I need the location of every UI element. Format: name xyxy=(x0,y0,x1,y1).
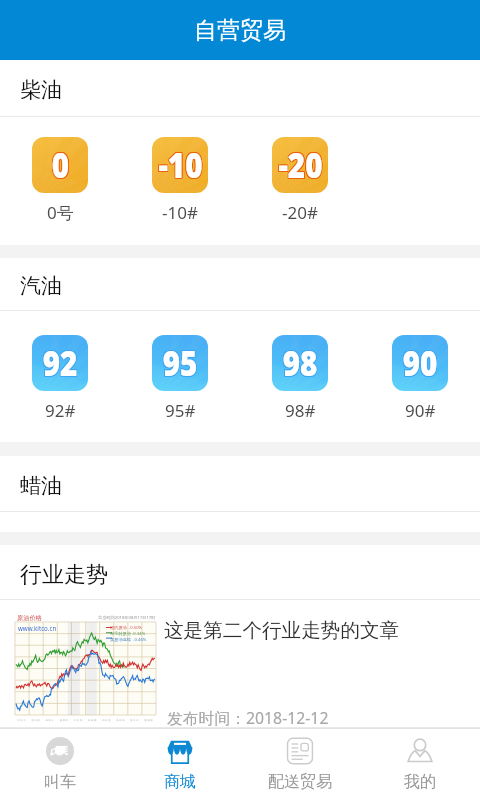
button[interactable]: 叫车 xyxy=(0,729,120,800)
button[interactable]: -20 xyxy=(240,117,360,245)
staticText: 90 xyxy=(402,338,438,386)
staticText: 90 xyxy=(403,340,439,388)
staticText: -10 xyxy=(159,142,204,190)
staticText: 北京时间2018年08月17日17时 xyxy=(98,615,156,621)
staticText: -10 xyxy=(158,141,203,189)
staticText: 92 xyxy=(42,338,78,386)
button[interactable]: 0 xyxy=(0,117,120,245)
button[interactable]: 我的 xyxy=(360,729,480,800)
staticText: 92 xyxy=(43,340,79,388)
staticText: 0 xyxy=(52,142,69,190)
staticText: -10 xyxy=(157,140,202,188)
staticText: 98 xyxy=(282,339,318,387)
staticText: -20 xyxy=(278,141,323,189)
staticText: -20 xyxy=(279,140,324,188)
staticText: -10 xyxy=(157,141,202,189)
staticText: 配送贸易 xyxy=(268,772,332,792)
staticText: 95 xyxy=(163,338,199,386)
staticText: 0号 xyxy=(47,201,74,224)
staticText: 92 xyxy=(43,338,79,386)
staticText: -10 xyxy=(158,142,203,190)
staticText: -10 xyxy=(158,140,203,188)
staticText: 98# xyxy=(285,399,316,422)
button[interactable]: 商城 xyxy=(120,729,240,800)
staticText: 0 xyxy=(51,141,68,189)
staticText: 自营贸易 xyxy=(194,16,286,45)
staticText: 92# xyxy=(45,399,76,422)
staticText: 98 xyxy=(281,339,317,387)
staticText: 0 xyxy=(52,141,69,189)
staticText: 90 xyxy=(401,339,437,387)
staticText: 92 xyxy=(43,339,79,387)
staticText: 0 xyxy=(52,140,69,188)
button[interactable]: 98 xyxy=(240,311,360,442)
staticText: 95 xyxy=(162,339,198,387)
staticText: 98 xyxy=(282,338,318,386)
staticText: -10 xyxy=(159,140,204,188)
staticText: 柴油 xyxy=(20,77,62,103)
staticText: 90 xyxy=(403,338,439,386)
staticText: 0 xyxy=(52,141,70,189)
staticText: 90 xyxy=(403,339,439,387)
staticText: 92 xyxy=(41,340,77,388)
staticText: 95 xyxy=(161,339,197,387)
button[interactable]: 配送贸易 xyxy=(240,729,360,800)
staticText: 商城 xyxy=(164,772,196,792)
staticText: 95 xyxy=(162,340,198,388)
staticText: -20 xyxy=(277,140,322,188)
staticText: 95 xyxy=(163,340,199,388)
staticText: 92 xyxy=(42,339,78,387)
staticText: 98 xyxy=(281,340,317,388)
staticText: 我的 xyxy=(404,772,436,792)
staticText: 纽约原油 -0.50% xyxy=(110,625,143,631)
staticText: 92 xyxy=(41,339,77,387)
staticText: 叫车 xyxy=(44,772,76,792)
staticText: 95 xyxy=(162,338,198,386)
staticText: 95# xyxy=(165,399,196,422)
staticText: 0 xyxy=(51,142,68,190)
staticText: -20 xyxy=(277,141,322,189)
staticText: 原油价格 xyxy=(17,614,42,622)
staticText: 98 xyxy=(282,340,318,388)
staticText: 95 xyxy=(161,340,197,388)
button[interactable]: 92 xyxy=(0,311,120,442)
staticText: 98 xyxy=(283,339,319,387)
staticText: 0 xyxy=(52,140,70,188)
staticText: 0 xyxy=(51,140,68,188)
staticText: -20 xyxy=(278,142,323,190)
button[interactable]: -10 xyxy=(120,117,240,245)
button[interactable]: 90 xyxy=(360,311,480,442)
staticText: -20# xyxy=(282,201,318,224)
button[interactable]: 原油价格 xyxy=(0,600,480,727)
staticText: 95 xyxy=(163,339,199,387)
staticText: www.kitco.cn xyxy=(18,624,57,632)
staticText: 90 xyxy=(402,339,438,387)
staticText: 92 xyxy=(42,340,78,388)
staticText: 0 xyxy=(52,142,70,190)
staticText: 90# xyxy=(405,399,436,422)
staticText: 发布时间：2018-12-12 xyxy=(167,707,329,729)
staticText: 90 xyxy=(401,340,437,388)
staticText: 90 xyxy=(402,340,438,388)
staticText: 行业走势 xyxy=(20,561,108,589)
staticText: 90 xyxy=(401,338,437,386)
staticText: 这是第二个行业走势的文章 xyxy=(164,618,400,643)
staticText: 92 xyxy=(41,338,77,386)
staticText: 98 xyxy=(283,340,319,388)
staticText: 95 xyxy=(161,338,197,386)
staticText: -20 xyxy=(279,141,324,189)
staticText: 美原油连续 -0.46% xyxy=(110,637,147,643)
staticText: -20 xyxy=(277,142,322,190)
staticText: -10# xyxy=(162,201,198,224)
staticText: -20 xyxy=(278,140,323,188)
staticText: 98 xyxy=(283,338,319,386)
staticText: -20 xyxy=(279,142,324,190)
staticText: 汽油 xyxy=(20,273,62,299)
button[interactable]: 95 xyxy=(120,311,240,442)
staticText: 布伦特原油 -0.34% xyxy=(110,631,146,637)
staticText: -10 xyxy=(157,142,202,190)
staticText: -10 xyxy=(159,141,204,189)
staticText: 98 xyxy=(281,338,317,386)
staticText: 蜡油 xyxy=(20,473,62,499)
